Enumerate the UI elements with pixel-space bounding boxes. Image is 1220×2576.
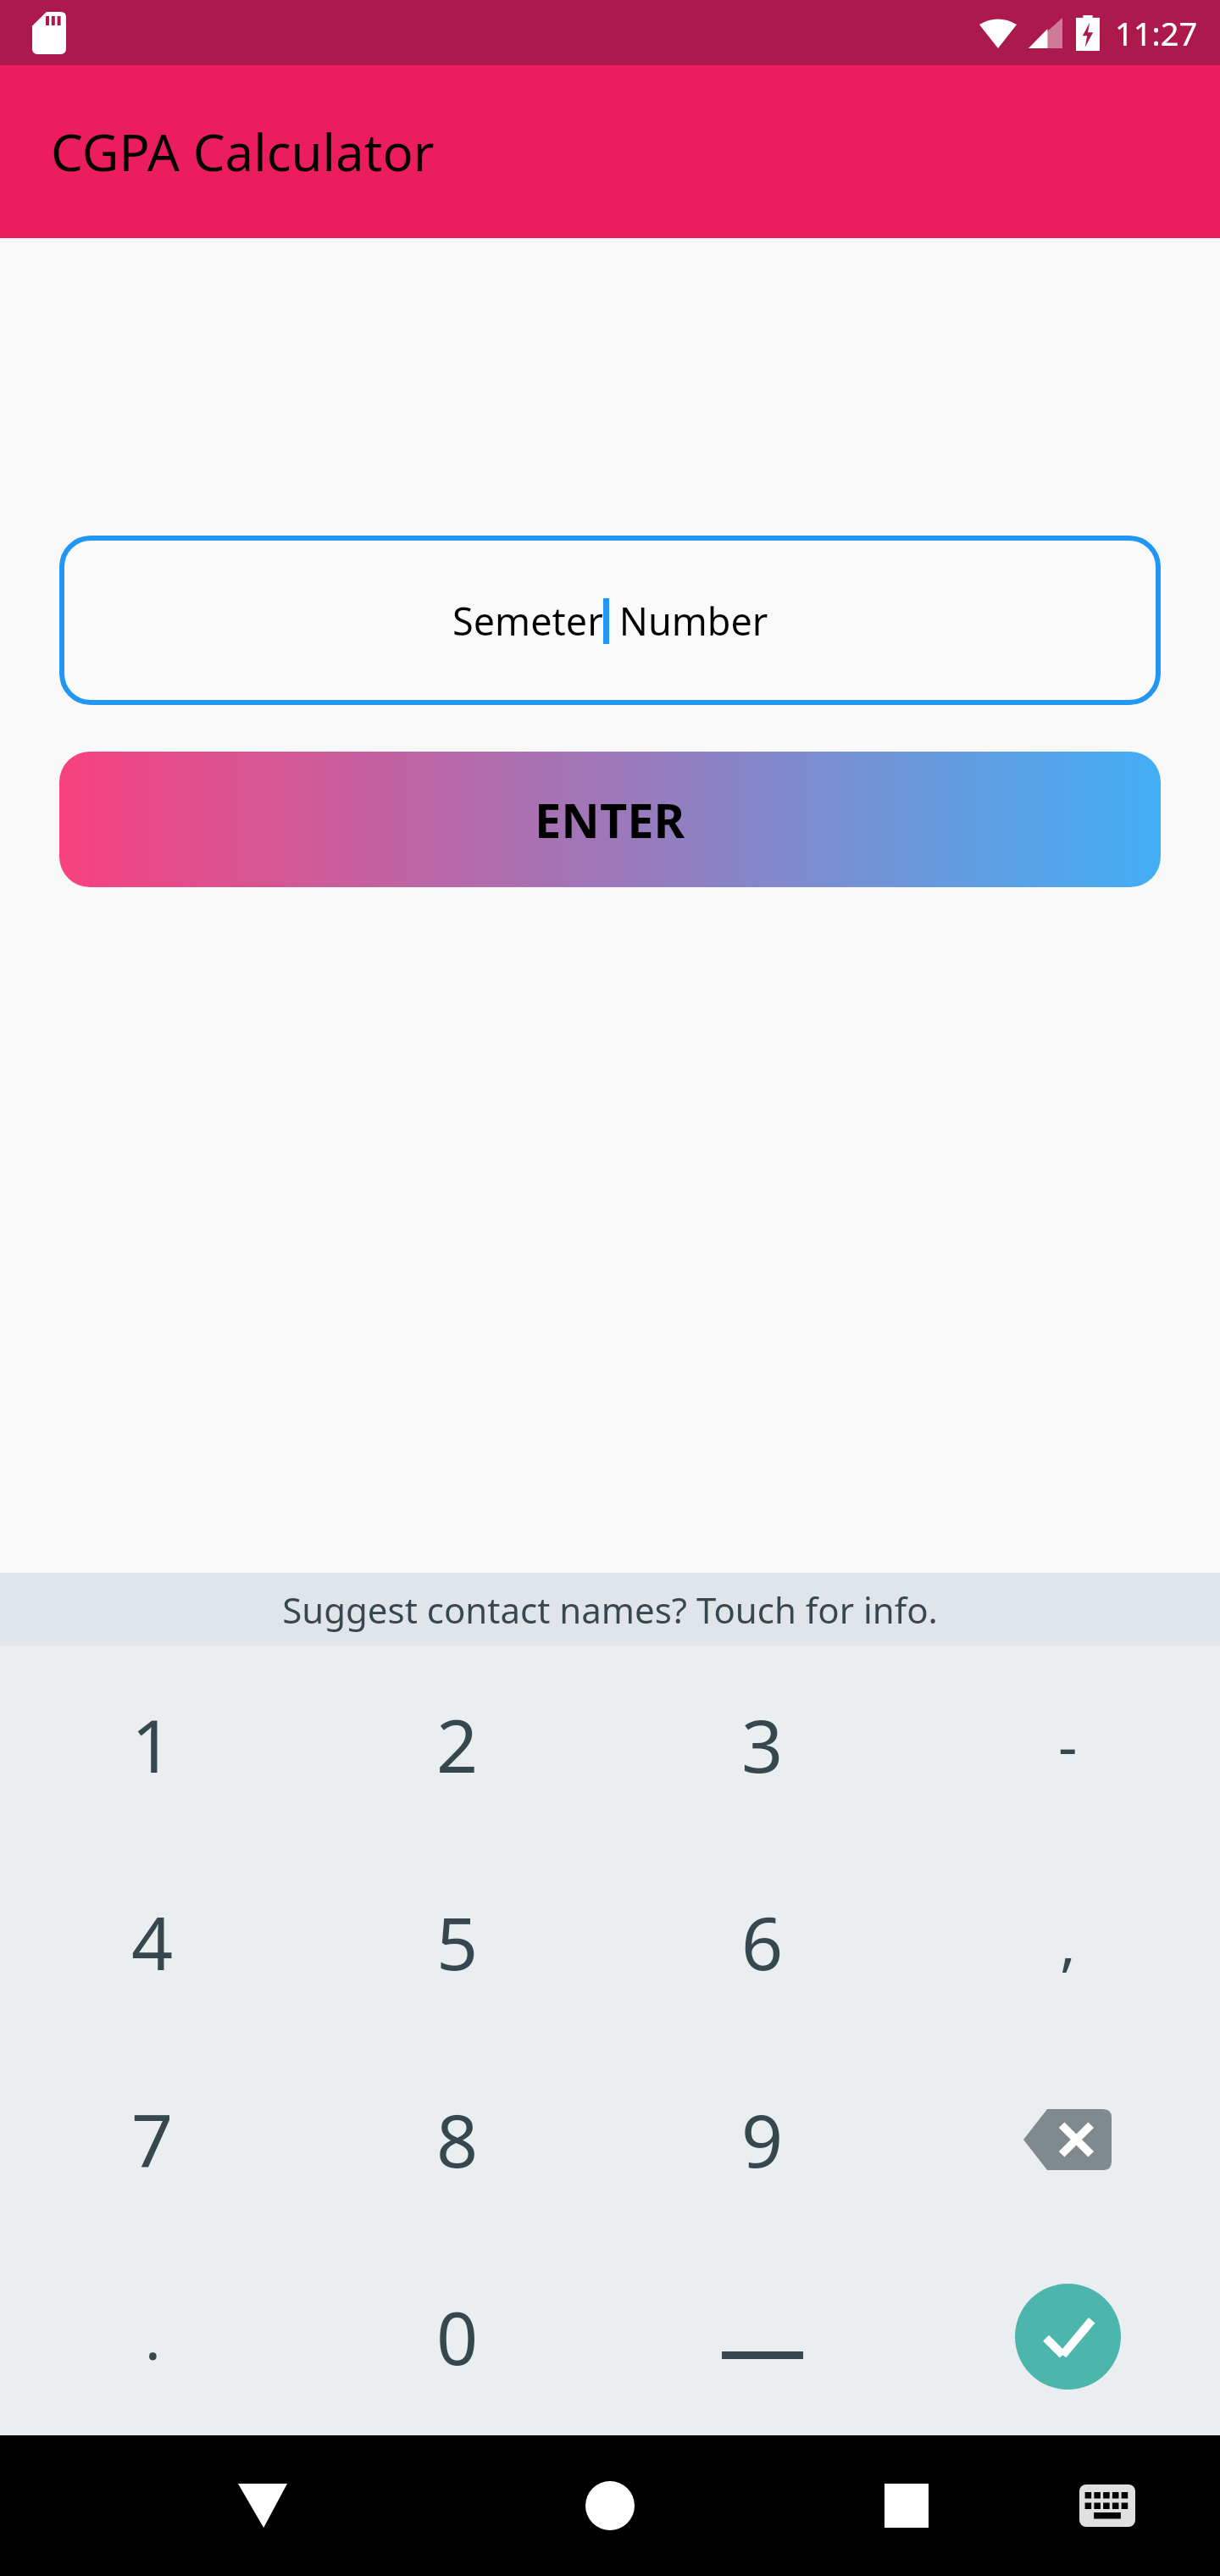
button[interactable]: Suggest contact names? Touch for info. (0, 1573, 1220, 1646)
staticText: 3 (741, 1695, 784, 1794)
button[interactable]: 2 (305, 1646, 610, 1843)
staticText: 6 (741, 1892, 784, 1991)
staticText: 4 (131, 1892, 174, 1991)
staticText: CGPA Calculator (51, 117, 435, 186)
button[interactable]: 4 (0, 1843, 305, 2040)
button[interactable]: - (915, 1646, 1220, 1843)
button[interactable]: 7 (0, 2040, 305, 2238)
staticText: Semeter (452, 595, 603, 647)
button[interactable]: 9 (610, 2040, 915, 2238)
staticText: 8 (436, 2090, 479, 2189)
button[interactable]: . (0, 2238, 305, 2435)
button[interactable]: , (915, 1843, 1220, 2040)
staticText: 5 (436, 1892, 479, 1991)
button[interactable]: 6 (610, 1843, 915, 2040)
button[interactable]: Semeter (59, 536, 1161, 705)
button[interactable]: Back (212, 2455, 313, 2557)
staticText: 11:27 (1115, 11, 1198, 55)
staticText: 2 (436, 1695, 479, 1794)
button[interactable]: Home (559, 2455, 661, 2557)
staticText: - (1058, 1704, 1078, 1785)
button[interactable]: 5 (305, 1843, 610, 2040)
button[interactable]: 8 (305, 2040, 610, 2238)
staticText: 7 (131, 2090, 174, 2189)
button[interactable]: 3 (610, 1646, 915, 1843)
staticText: Number (609, 595, 768, 647)
staticText: ENTER (535, 787, 685, 852)
button[interactable]: Change keyboard (1061, 2459, 1154, 2552)
button[interactable]: Delete (915, 2040, 1220, 2238)
button[interactable]: 0 (305, 2238, 610, 2435)
button[interactable]: 1 (0, 1646, 305, 1843)
staticText: , (1060, 1901, 1076, 1982)
staticText: 0 (436, 2287, 479, 2386)
staticText: Suggest contact names? Touch for info. (282, 1585, 938, 1634)
button[interactable]: Done (915, 2238, 1220, 2435)
button[interactable]: Recent apps (856, 2455, 957, 2557)
button[interactable] (610, 2238, 915, 2435)
staticText: 9 (741, 2090, 784, 2189)
button[interactable]: ENTER (59, 752, 1161, 887)
staticText: . (145, 2296, 161, 2377)
staticText: 1 (131, 1695, 174, 1794)
